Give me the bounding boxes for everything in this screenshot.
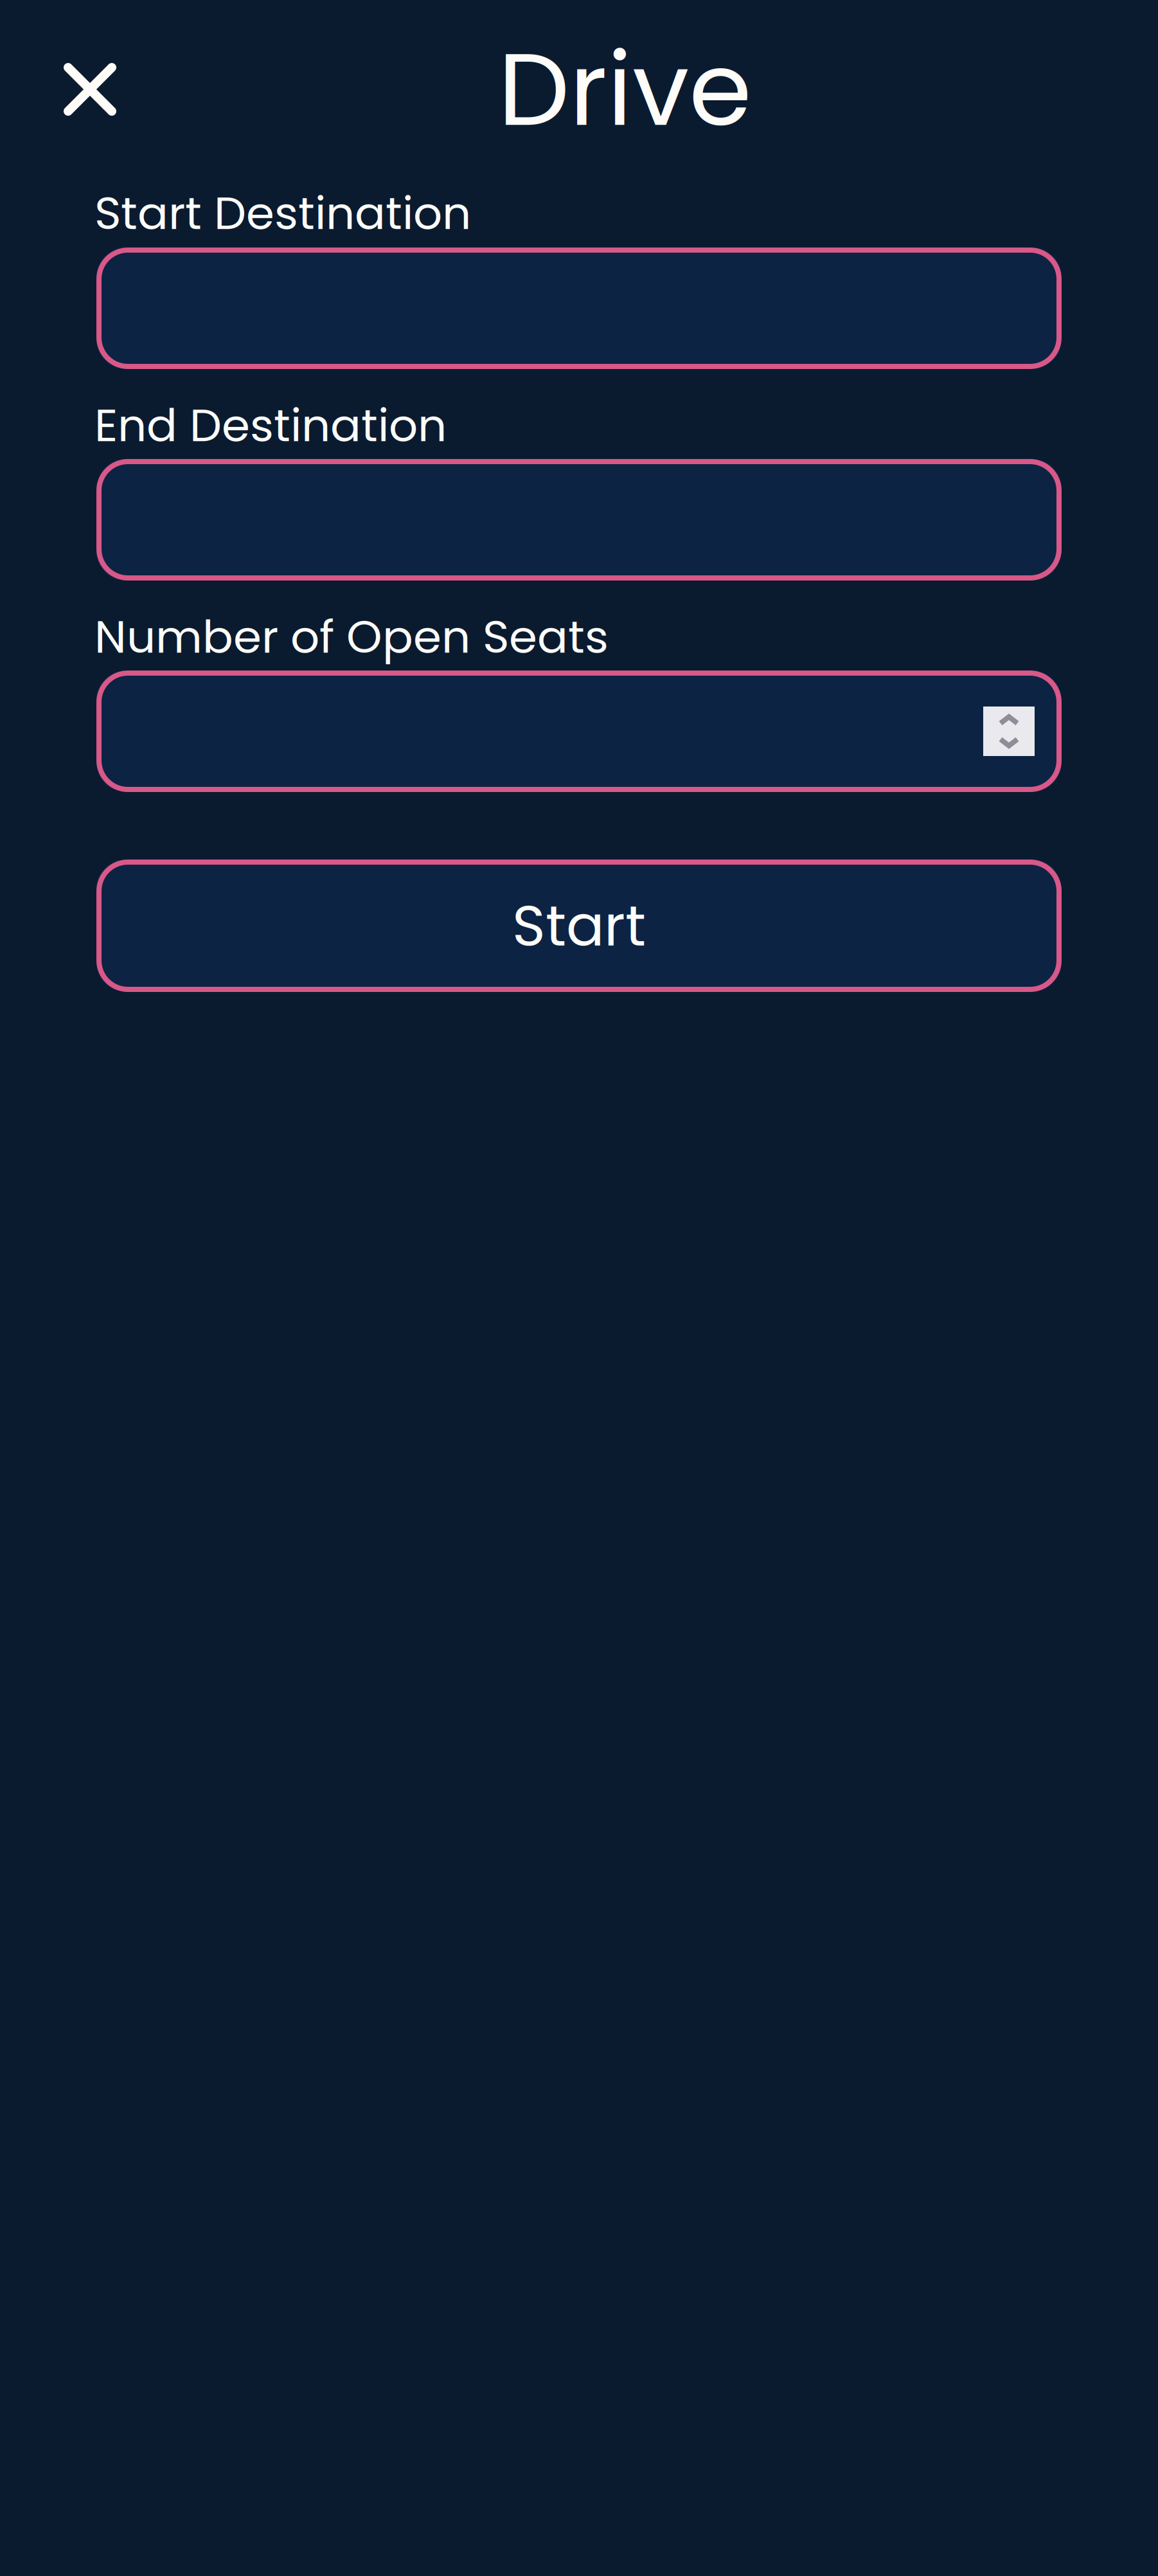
staticText: Start Destination [94, 181, 471, 245]
staticText: End Destination [94, 393, 447, 457]
button[interactable]: Start Destination [96, 248, 1062, 369]
staticText: Start [512, 886, 646, 965]
button[interactable]: End Destination [96, 459, 1062, 581]
staticText: Number of Open Seats [94, 605, 609, 669]
button[interactable]: Start [96, 860, 1062, 992]
staticText: Drive [498, 19, 752, 160]
button[interactable]: Adjust number of open seats [983, 707, 1035, 756]
button[interactable]: Close [48, 48, 132, 131]
